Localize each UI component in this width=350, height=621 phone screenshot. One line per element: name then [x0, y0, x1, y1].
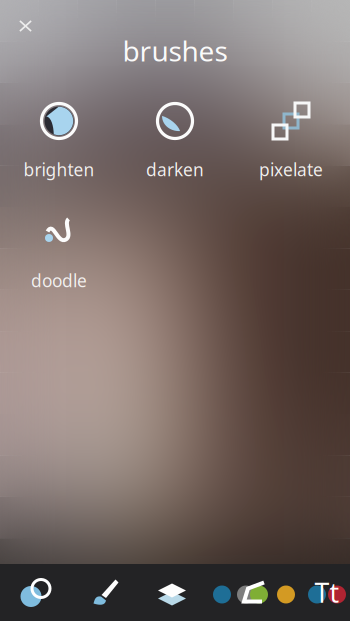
button[interactable]: Brushes — [72, 564, 140, 620]
button[interactable]: Adjust — [0, 564, 72, 620]
button[interactable]: Layers — [140, 564, 204, 620]
button[interactable]: Text — [304, 564, 350, 620]
staticText: pixelate — [259, 158, 323, 181]
button[interactable]: Effects — [204, 564, 304, 620]
staticText: brighten — [23, 158, 94, 181]
staticText: darken — [146, 158, 204, 181]
staticText: doodle — [31, 269, 87, 292]
staticText: brushes — [122, 32, 227, 69]
staticText: Tt — [314, 575, 339, 610]
button[interactable]: pixelate — [233, 86, 349, 197]
button[interactable]: doodle — [1, 197, 117, 308]
button[interactable]: Close — [6, 7, 44, 45]
button[interactable]: brighten — [1, 86, 117, 197]
button[interactable]: darken — [117, 86, 233, 197]
